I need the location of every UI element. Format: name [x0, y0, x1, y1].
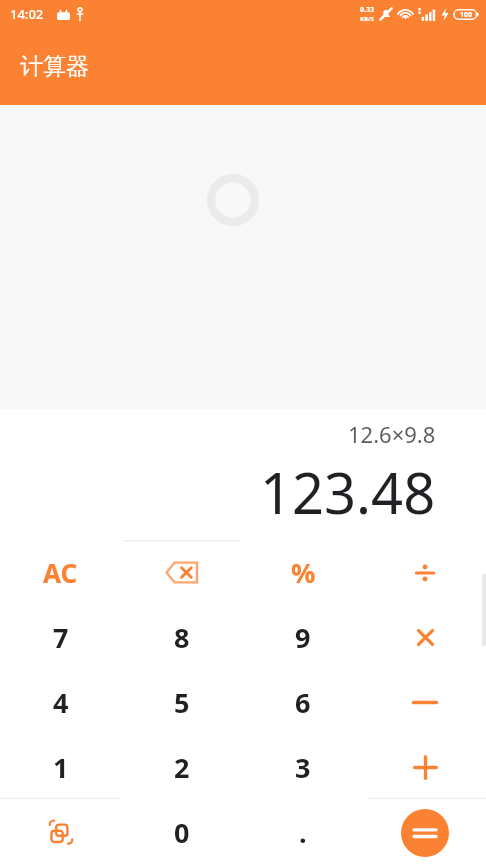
button[interactable]: Minus [364, 670, 486, 735]
staticText: 6 [295, 684, 311, 721]
button[interactable]: Unit converter [0, 800, 121, 865]
button[interactable]: 1 [0, 735, 121, 800]
staticText: 4 [53, 684, 69, 721]
staticText: % [291, 554, 316, 591]
staticText: 8 [174, 619, 190, 656]
button[interactable]: Plus [364, 735, 486, 800]
staticText: 1 [53, 749, 69, 786]
button[interactable]: 0 [121, 800, 242, 865]
staticText: . [299, 814, 307, 851]
staticText: 2 [174, 749, 190, 786]
staticText: KB/S [360, 15, 374, 23]
staticText: 100 [460, 10, 473, 20]
button[interactable]: 6 [242, 670, 364, 735]
button[interactable]: 4 [0, 670, 121, 735]
staticText: 3 [295, 749, 311, 786]
staticText: 5 [174, 684, 190, 721]
button[interactable]: 5 [121, 670, 242, 735]
button[interactable]: Divide [364, 540, 486, 605]
button[interactable]: 8 [121, 605, 242, 670]
button[interactable]: 2 [121, 735, 242, 800]
staticText: 0.33 [360, 5, 374, 15]
staticText: 0 [174, 814, 190, 851]
staticText: 9 [295, 619, 311, 656]
button[interactable]: Backspace [121, 540, 242, 605]
button[interactable]: AC [0, 540, 121, 605]
button[interactable]: 9 [242, 605, 364, 670]
button[interactable]: 7 [0, 605, 121, 670]
staticText: 123.48 [260, 454, 436, 530]
button[interactable]: Multiply [364, 605, 486, 670]
button[interactable]: 3 [242, 735, 364, 800]
staticText: 7 [53, 619, 69, 656]
staticText: 计算器 [20, 52, 89, 81]
button[interactable]: % [242, 540, 364, 605]
staticText: 14:02 [10, 5, 44, 23]
button[interactable]: Equals [401, 809, 449, 857]
staticText: AC [43, 555, 78, 590]
button[interactable]: . [242, 800, 364, 865]
staticText: 12.6×9.8 [348, 419, 436, 449]
